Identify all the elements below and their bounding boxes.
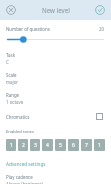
button[interactable]: Close xyxy=(4,3,18,17)
staticText: Number of questions xyxy=(6,26,50,32)
staticText: 4 xyxy=(46,142,49,149)
staticText: 7 xyxy=(85,142,88,149)
button[interactable]: 7 xyxy=(81,139,92,151)
staticText: 5 xyxy=(59,142,62,149)
staticText: Scale xyxy=(6,72,17,78)
button[interactable]: Save xyxy=(93,3,107,17)
staticText: Range xyxy=(6,92,20,98)
button[interactable]: Number of questions slider xyxy=(6,35,105,44)
staticText: Always (beginner) xyxy=(6,181,43,184)
staticText: 6 xyxy=(72,142,75,149)
button[interactable]: 4 xyxy=(42,139,53,151)
button[interactable]: 3 xyxy=(30,139,40,151)
staticText: 1 xyxy=(98,142,101,149)
staticText: New level xyxy=(42,6,70,14)
button[interactable]: Range xyxy=(6,92,105,105)
button[interactable]: Scale xyxy=(6,72,105,85)
staticText: 1 octave xyxy=(6,99,24,105)
button[interactable]: Play cadence xyxy=(6,174,105,184)
staticText: Enabled tones xyxy=(6,129,34,135)
button[interactable]: Task xyxy=(6,52,105,65)
button[interactable]: 6 xyxy=(68,139,79,151)
staticText: Play cadence xyxy=(6,174,33,180)
staticText: 1 xyxy=(10,142,13,149)
button[interactable]: 2 xyxy=(18,139,28,151)
staticText: C xyxy=(6,59,9,65)
button[interactable]: Chromatics xyxy=(6,113,105,120)
staticText: major xyxy=(6,79,19,85)
button[interactable]: 1 xyxy=(94,139,105,151)
staticText: 20 xyxy=(99,26,105,32)
staticText: Chromatics xyxy=(6,114,30,120)
button[interactable]: 1 xyxy=(6,139,16,151)
staticText: Advanced settings xyxy=(6,161,46,167)
staticText: 3 xyxy=(34,142,37,149)
staticText: 2 xyxy=(22,142,25,149)
staticText: Task xyxy=(6,52,16,58)
button[interactable]: 5 xyxy=(55,139,66,151)
